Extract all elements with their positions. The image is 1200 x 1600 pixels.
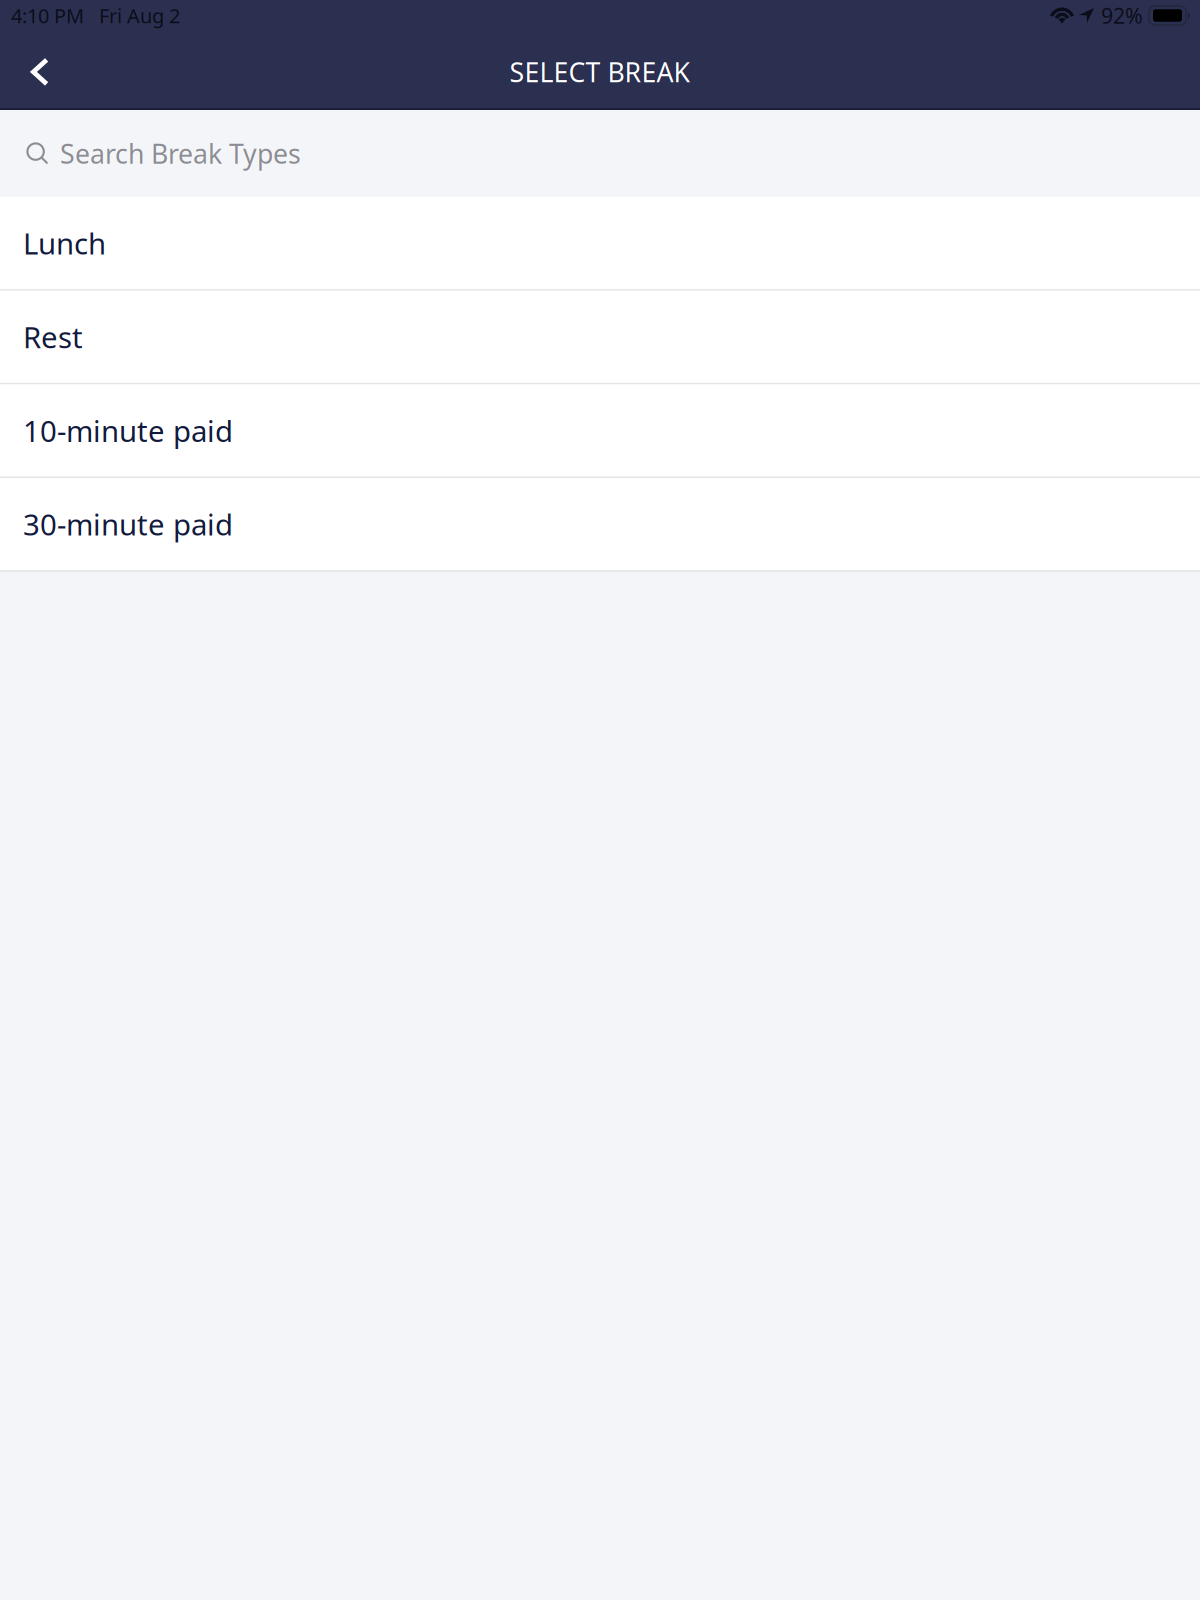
button[interactable]: Lunch [0, 197, 1200, 289]
staticText: Search Break Types [60, 136, 301, 171]
staticText: Rest [23, 317, 83, 356]
button[interactable]: 30-minute paid [0, 478, 1200, 570]
staticText: Fri Aug 2 [99, 2, 180, 29]
staticText: 92% [1101, 1, 1143, 30]
button[interactable]: Search Break Types [0, 110, 1200, 197]
button[interactable]: Rest [0, 291, 1200, 383]
staticText: 10-minute paid [23, 411, 233, 450]
button[interactable]: 10-minute paid [0, 384, 1200, 477]
button[interactable]: Back [0, 38, 76, 105]
staticText: Lunch [23, 224, 106, 263]
staticText: 30-minute paid [23, 505, 233, 544]
staticText: 4:10 PM [11, 2, 84, 29]
staticText: SELECT BREAK [509, 54, 690, 90]
